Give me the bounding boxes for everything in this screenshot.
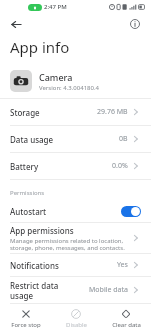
button[interactable]: Notifications (0, 254, 151, 277)
staticText: Data usage (10, 134, 54, 145)
staticText: Version: 4.3.004180.4 (39, 84, 99, 92)
staticText: Notifications (10, 260, 59, 271)
button[interactable]: Force stop (0, 304, 51, 334)
staticText: Disable (66, 321, 87, 329)
button[interactable]: Data usage (0, 126, 151, 153)
staticText: Clear data (112, 321, 141, 329)
button[interactable]: Clear data (101, 304, 151, 334)
button[interactable]: Battery (0, 153, 151, 180)
staticText: App permissions (10, 225, 74, 236)
staticText: Mobile data (89, 285, 128, 295)
button[interactable]: Disable (51, 304, 101, 334)
staticText: Yes (117, 260, 128, 270)
staticText: 29.76 MB (97, 107, 128, 117)
staticText: Camera (39, 71, 73, 83)
button[interactable]: Autostart (0, 200, 151, 223)
staticText: Autostart (10, 206, 47, 217)
staticText: App info (10, 37, 70, 57)
button[interactable]: App permissions (0, 223, 151, 254)
button[interactable]: Autostart toggle (121, 206, 141, 217)
staticText: Restrict data usage (10, 280, 59, 301)
staticText: 0B (119, 134, 128, 144)
staticText: Storage (10, 107, 40, 118)
staticText: Manage permissions related to location, … (10, 237, 125, 252)
button[interactable]: Help (127, 16, 143, 32)
button[interactable]: Storage (0, 99, 151, 126)
staticText: 0.0% (112, 161, 128, 171)
staticText: Force stop (11, 321, 41, 329)
staticText: Battery (10, 161, 39, 172)
staticText: 2:47 PM (44, 3, 67, 11)
button[interactable]: Back (8, 16, 24, 32)
staticText: Permissions (10, 189, 45, 197)
button[interactable]: Restrict data usage (0, 277, 151, 304)
